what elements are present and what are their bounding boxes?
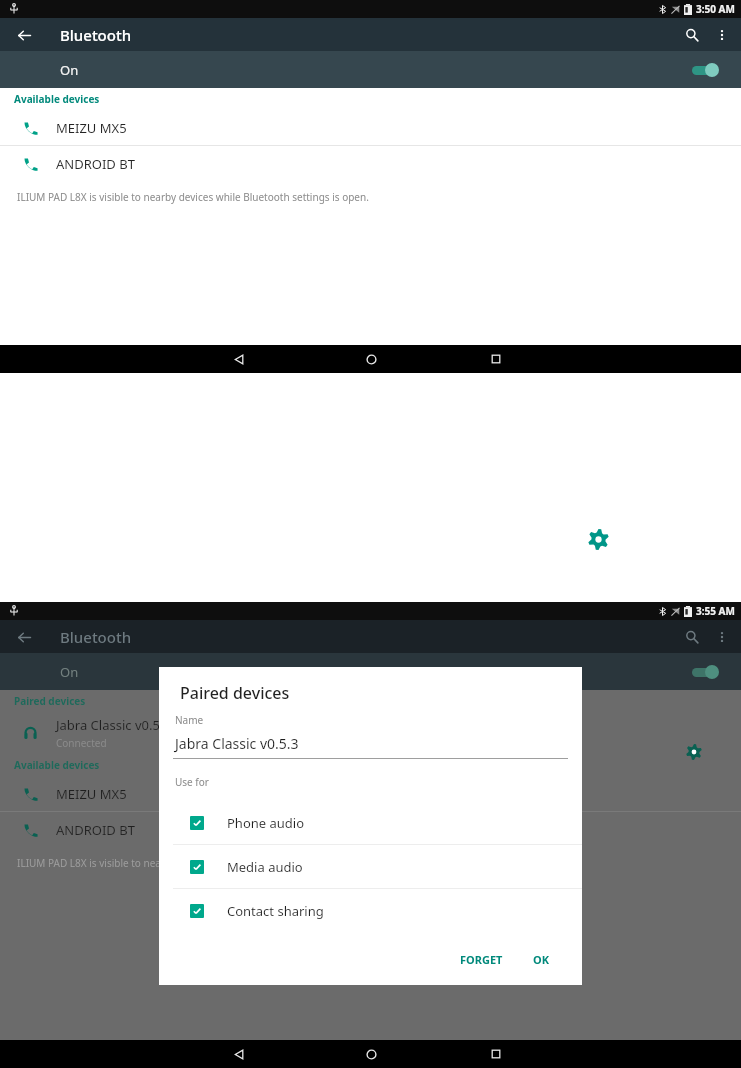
button[interactable]: Search bbox=[677, 622, 707, 652]
staticText: FORGET bbox=[460, 952, 503, 967]
button[interactable]: ANDROID BT bbox=[0, 812, 741, 847]
button[interactable]: Contact sharing bbox=[159, 889, 582, 932]
button[interactable]: OK bbox=[523, 946, 560, 973]
staticText: OK bbox=[533, 952, 550, 967]
button[interactable]: Settings bbox=[584, 525, 612, 553]
staticText: Paired devices bbox=[14, 694, 86, 708]
button[interactable]: On bbox=[0, 51, 741, 88]
staticText: Contact sharing bbox=[227, 902, 324, 920]
button[interactable]: Recents bbox=[483, 1041, 509, 1067]
button[interactable]: Navigate up bbox=[10, 21, 38, 49]
button[interactable]: Home bbox=[358, 346, 384, 372]
staticText: On bbox=[60, 663, 79, 681]
staticText: MEIZU MX5 bbox=[56, 119, 127, 137]
staticText: MEIZU MX5 bbox=[56, 785, 127, 803]
staticText: ANDROID BT bbox=[56, 821, 135, 839]
button[interactable]: Back bbox=[226, 1041, 252, 1067]
staticText: Available devices bbox=[14, 758, 100, 772]
button[interactable]: Phone audio bbox=[159, 801, 582, 844]
staticText: Name bbox=[175, 713, 204, 727]
staticText: On bbox=[60, 61, 79, 79]
button[interactable]: Jabra Classic v0.5.3 bbox=[0, 712, 741, 754]
staticText: 3:55 AM bbox=[696, 604, 735, 618]
button[interactable]: ANDROID BT bbox=[0, 146, 741, 181]
staticText: Available devices bbox=[14, 92, 100, 106]
button[interactable]: MEIZU MX5 bbox=[0, 110, 741, 145]
button[interactable]: Home bbox=[358, 1041, 384, 1067]
staticText: Media audio bbox=[227, 858, 303, 876]
staticText: Use for bbox=[175, 775, 209, 789]
button[interactable]: Device settings bbox=[682, 740, 706, 764]
staticText: 3:50 AM bbox=[696, 2, 735, 16]
button[interactable]: MEIZU MX5 bbox=[0, 776, 741, 811]
staticText: Connected bbox=[56, 736, 107, 750]
button[interactable]: More options bbox=[707, 20, 737, 50]
button[interactable]: Media audio bbox=[159, 845, 582, 888]
staticText: ANDROID BT bbox=[56, 155, 135, 173]
button[interactable]: Search bbox=[677, 20, 707, 50]
staticText: Paired devices bbox=[180, 682, 290, 704]
button[interactable]: On bbox=[0, 653, 741, 690]
button[interactable]: Navigate up bbox=[10, 623, 38, 651]
staticText: ILIUM PAD L8X is visible to nearby devic… bbox=[17, 190, 369, 204]
staticText: Bluetooth bbox=[60, 25, 132, 45]
staticText: ILIUM PAD L8X is visible to nearby devic… bbox=[17, 856, 369, 870]
staticText: Phone audio bbox=[227, 814, 305, 832]
staticText: Jabra Classic v0.5.3 bbox=[175, 734, 299, 753]
staticText: Bluetooth bbox=[60, 627, 132, 647]
staticText: Jabra Classic v0.5.3 bbox=[56, 716, 171, 734]
button[interactable]: FORGET bbox=[450, 946, 513, 973]
button[interactable]: Back bbox=[226, 346, 252, 372]
button[interactable]: Recents bbox=[483, 346, 509, 372]
button[interactable]: More options bbox=[707, 622, 737, 652]
